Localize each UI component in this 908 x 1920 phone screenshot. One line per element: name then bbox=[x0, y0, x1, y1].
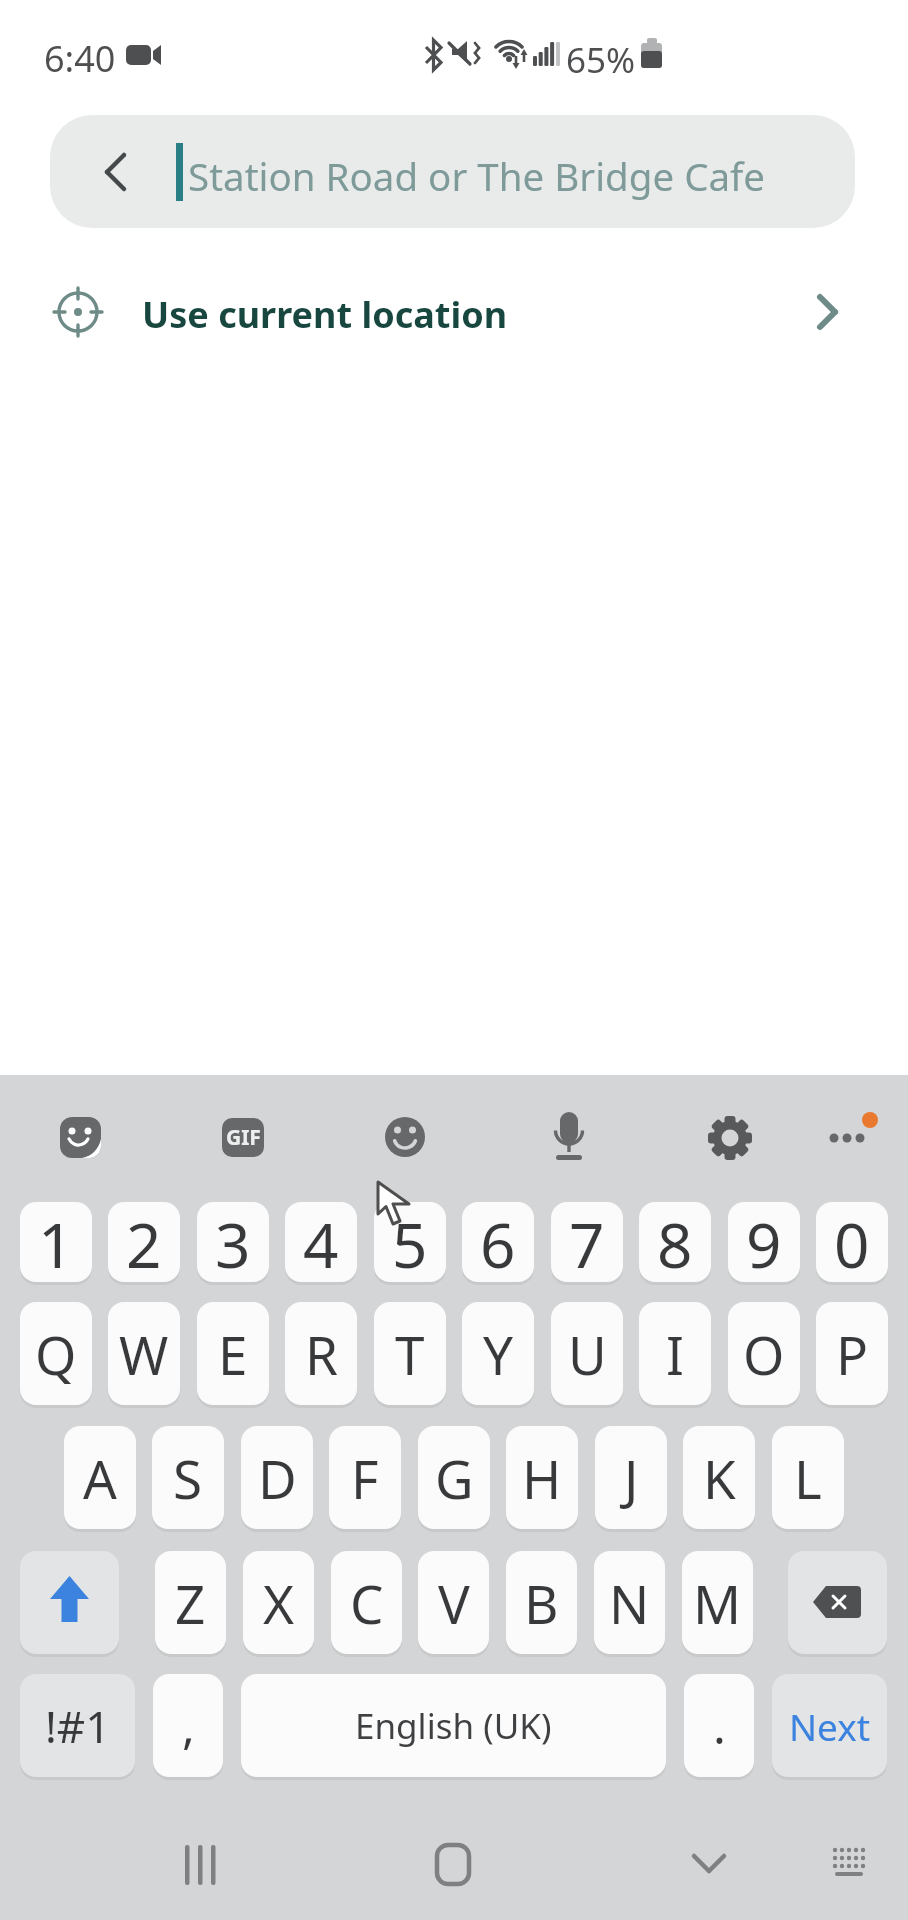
button[interactable] bbox=[788, 1551, 887, 1654]
staticText: R bbox=[305, 1318, 338, 1390]
staticText: P bbox=[836, 1318, 869, 1390]
button[interactable]: . bbox=[684, 1674, 754, 1777]
button[interactable] bbox=[690, 1097, 770, 1177]
button[interactable]: 0 bbox=[816, 1202, 888, 1282]
staticText: C bbox=[350, 1567, 384, 1639]
button[interactable]: 2 bbox=[108, 1202, 180, 1282]
button[interactable]: Z bbox=[155, 1551, 226, 1654]
staticText: 8 bbox=[657, 1202, 693, 1282]
button[interactable] bbox=[528, 1097, 608, 1177]
button[interactable]: C bbox=[331, 1551, 402, 1654]
button[interactable] bbox=[669, 1830, 749, 1900]
button[interactable]: English (UK) bbox=[241, 1674, 666, 1777]
button[interactable] bbox=[810, 1097, 890, 1177]
button[interactable]: 1 bbox=[20, 1202, 92, 1282]
button[interactable] bbox=[810, 1830, 890, 1900]
button[interactable]: U bbox=[551, 1302, 623, 1405]
staticText: L bbox=[794, 1442, 822, 1514]
staticText: 5 bbox=[392, 1202, 428, 1282]
staticText: O bbox=[743, 1318, 785, 1390]
button[interactable] bbox=[20, 1551, 119, 1654]
button[interactable]: !#1 bbox=[20, 1674, 135, 1777]
staticText: 3 bbox=[215, 1202, 251, 1282]
button[interactable]: Next bbox=[772, 1674, 887, 1777]
button[interactable]: A bbox=[64, 1426, 136, 1529]
staticText: Q bbox=[35, 1318, 77, 1390]
button[interactable]: N bbox=[594, 1551, 665, 1654]
button[interactable] bbox=[413, 1830, 493, 1900]
button[interactable]: H bbox=[506, 1426, 578, 1529]
staticText: W bbox=[119, 1318, 169, 1390]
staticText: Station Road or The Bridge Cafe bbox=[188, 150, 766, 202]
button[interactable]: M bbox=[682, 1551, 753, 1654]
staticText: Next bbox=[789, 1701, 871, 1751]
staticText: U bbox=[568, 1318, 607, 1390]
button[interactable]: D bbox=[241, 1426, 313, 1529]
staticText: D bbox=[258, 1442, 297, 1514]
staticText: H bbox=[522, 1442, 562, 1514]
button[interactable] bbox=[160, 1830, 240, 1900]
button[interactable]: 5 bbox=[374, 1202, 446, 1282]
staticText: N bbox=[609, 1567, 650, 1639]
button[interactable] bbox=[202, 1097, 282, 1177]
button[interactable]: F bbox=[329, 1426, 401, 1529]
button[interactable]: P bbox=[816, 1302, 888, 1405]
button[interactable]: S bbox=[152, 1426, 224, 1529]
staticText: S bbox=[173, 1442, 203, 1514]
button[interactable] bbox=[50, 115, 855, 228]
staticText: M bbox=[693, 1567, 742, 1639]
button[interactable]: G bbox=[418, 1426, 490, 1529]
staticText: E bbox=[218, 1318, 248, 1390]
button[interactable]: 9 bbox=[728, 1202, 800, 1282]
staticText: , bbox=[182, 1693, 195, 1758]
staticText: English (UK) bbox=[355, 1702, 552, 1750]
staticText: K bbox=[703, 1442, 736, 1514]
staticText: 1 bbox=[38, 1202, 74, 1282]
staticText: 7 bbox=[569, 1202, 605, 1282]
staticText: V bbox=[438, 1567, 470, 1639]
staticText: !#1 bbox=[45, 1696, 111, 1756]
button[interactable] bbox=[40, 1097, 120, 1177]
button[interactable]: 6 bbox=[462, 1202, 534, 1282]
button[interactable] bbox=[365, 1097, 445, 1177]
button[interactable]: 3 bbox=[197, 1202, 269, 1282]
staticText: 6:40 bbox=[44, 34, 116, 83]
staticText: T bbox=[395, 1318, 425, 1390]
button[interactable]: O bbox=[728, 1302, 800, 1405]
button[interactable]: V bbox=[418, 1551, 489, 1654]
button[interactable]: R bbox=[285, 1302, 357, 1405]
button[interactable]: L bbox=[772, 1426, 844, 1529]
staticText: 2 bbox=[126, 1202, 162, 1282]
staticText: . bbox=[713, 1693, 726, 1758]
button[interactable]: E bbox=[197, 1302, 269, 1405]
button[interactable]: 8 bbox=[639, 1202, 711, 1282]
staticText: 6 bbox=[480, 1202, 516, 1282]
button[interactable]: W bbox=[108, 1302, 180, 1405]
staticText: Z bbox=[175, 1567, 206, 1639]
staticText: B bbox=[524, 1567, 559, 1639]
button[interactable]: T bbox=[374, 1302, 446, 1405]
staticText: GIF bbox=[226, 1123, 261, 1152]
button[interactable] bbox=[0, 258, 908, 366]
button[interactable]: , bbox=[153, 1674, 223, 1777]
staticText: 4 bbox=[303, 1202, 339, 1282]
button[interactable]: J bbox=[595, 1426, 667, 1529]
staticText: I bbox=[666, 1318, 684, 1390]
button[interactable]: B bbox=[506, 1551, 577, 1654]
staticText: 9 bbox=[746, 1202, 782, 1282]
staticText: G bbox=[435, 1442, 474, 1514]
button[interactable]: Q bbox=[20, 1302, 92, 1405]
button[interactable]: Y bbox=[462, 1302, 534, 1405]
button[interactable]: K bbox=[683, 1426, 755, 1529]
staticText: 0 bbox=[834, 1202, 870, 1282]
button[interactable]: I bbox=[639, 1302, 711, 1405]
staticText: J bbox=[624, 1442, 639, 1514]
button[interactable]: X bbox=[243, 1551, 314, 1654]
button[interactable]: 4 bbox=[285, 1202, 357, 1282]
staticText: F bbox=[351, 1442, 379, 1514]
staticText: Use current location bbox=[142, 290, 508, 339]
staticText: 65% bbox=[566, 36, 636, 84]
staticText: X bbox=[263, 1567, 295, 1639]
staticText: A bbox=[83, 1442, 117, 1514]
button[interactable]: 7 bbox=[551, 1202, 623, 1282]
